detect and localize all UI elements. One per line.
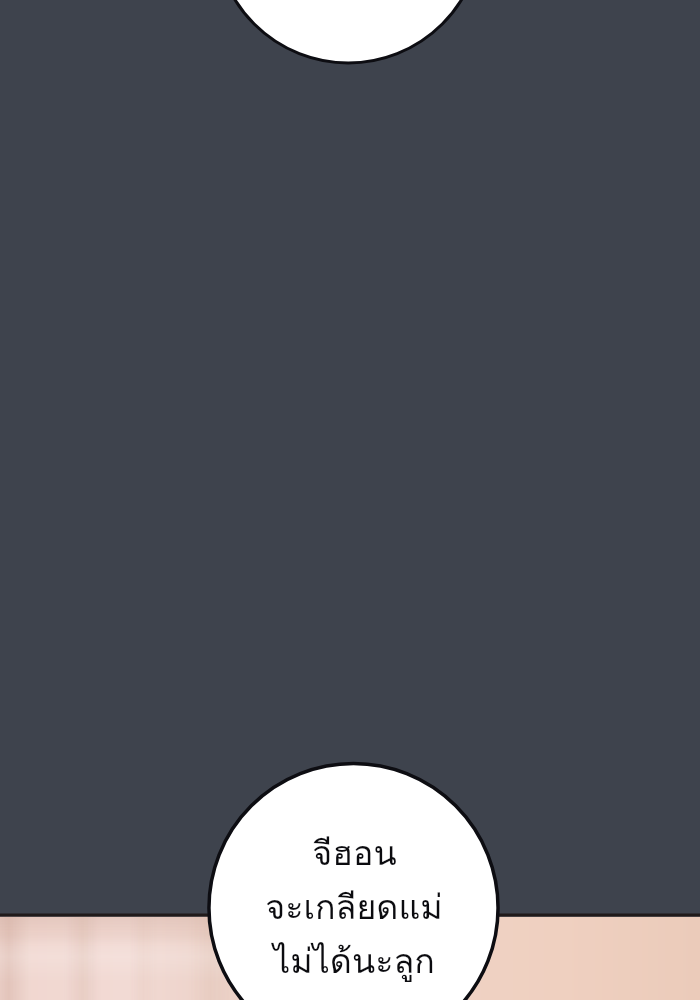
staticText: ไม่ได้นะลูก xyxy=(273,934,435,988)
staticText: จีฮอน xyxy=(312,826,397,880)
staticText: จะเกลียดแม่ xyxy=(265,880,443,934)
